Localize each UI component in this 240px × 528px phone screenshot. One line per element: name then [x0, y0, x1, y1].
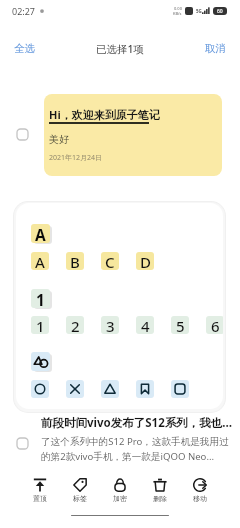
staticText: D	[140, 252, 151, 270]
staticText: 2	[71, 316, 80, 334]
button[interactable]: 5	[171, 316, 189, 334]
button[interactable]: Bookmark	[136, 380, 154, 398]
staticText: 5	[176, 316, 185, 334]
button[interactable]: 1	[31, 316, 49, 334]
staticText: 6	[211, 316, 220, 334]
staticText: 删除	[153, 494, 167, 503]
button[interactable]: Circle	[31, 380, 49, 398]
staticText: 60	[217, 8, 223, 15]
button[interactable]: Hi，欢迎来到原子笔记	[44, 94, 222, 176]
staticText: 0.00	[174, 6, 182, 11]
staticText: 3	[106, 316, 115, 334]
button[interactable]: Square	[171, 380, 189, 398]
staticText: 置顶	[33, 494, 47, 503]
button[interactable]: 1	[31, 289, 50, 308]
button[interactable]: A	[31, 224, 50, 243]
button[interactable]: C	[101, 252, 119, 270]
staticText: 移动	[193, 494, 207, 503]
button[interactable]: 2	[66, 316, 84, 334]
button[interactable]: Shapes	[31, 352, 50, 371]
staticText: 02:27	[12, 5, 36, 17]
button[interactable]: 4	[136, 316, 154, 334]
button[interactable]: 全选	[0, 36, 49, 63]
button[interactable]: Select	[16, 437, 29, 450]
button[interactable]: 加密	[100, 478, 140, 503]
staticText: 已选择1项	[96, 42, 145, 56]
button[interactable]: B	[66, 252, 84, 270]
staticText: B	[70, 252, 80, 270]
button[interactable]: 置顶	[20, 478, 60, 503]
staticText: 加密	[113, 494, 127, 503]
button[interactable]: 3	[101, 316, 119, 334]
staticText: A	[35, 252, 45, 270]
button[interactable]: D	[136, 252, 154, 270]
staticText: 2021年12月24日	[49, 153, 103, 163]
staticText: KB/s	[173, 11, 182, 16]
staticText: 标签	[73, 494, 87, 503]
staticText: C	[105, 252, 115, 270]
button[interactable]: A	[31, 252, 49, 270]
button[interactable]: 前段时间vivo发布了S12系列，我也…	[41, 410, 237, 466]
button[interactable]: 删除	[140, 478, 180, 503]
button[interactable]: Close	[66, 380, 84, 398]
staticText: 1	[36, 316, 45, 334]
staticText: 美好	[49, 133, 69, 146]
button[interactable]: 取消	[191, 36, 240, 63]
button[interactable]: 标签	[60, 478, 100, 503]
button[interactable]: Triangle	[101, 380, 119, 398]
staticText: 了这个系列中的S12 Pro，这款手机是我用过的第2款vivo手机，第一款是iQ…	[41, 435, 237, 463]
button[interactable]: 移动	[180, 478, 220, 503]
button[interactable]: Select	[16, 128, 29, 141]
button[interactable]: 6	[206, 316, 223, 334]
staticText: 4	[141, 316, 150, 334]
staticText: 取消	[205, 42, 226, 55]
staticText: A	[35, 224, 46, 243]
staticText: 全选	[14, 42, 35, 55]
staticText: 1	[36, 289, 45, 308]
staticText: 5G	[196, 8, 202, 14]
staticText: Hi，欢迎来到原子笔记	[49, 107, 160, 122]
staticText: 前段时间vivo发布了S12系列，我也…	[41, 415, 233, 431]
